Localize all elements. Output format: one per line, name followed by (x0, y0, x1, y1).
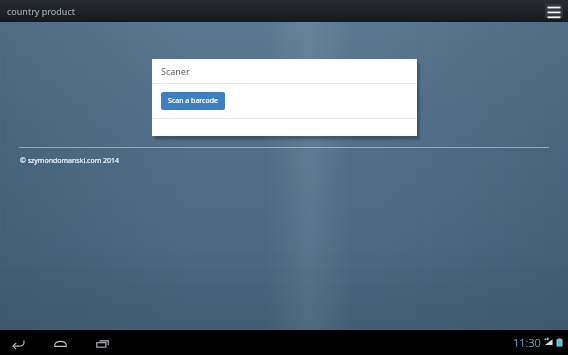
button[interactable]: Menu (544, 3, 564, 19)
button[interactable]: Scan a barcode (161, 92, 225, 110)
button[interactable]: Back (8, 333, 28, 353)
staticText: Scan a barcode (168, 96, 218, 106)
staticText: Scaner (161, 65, 190, 77)
button[interactable]: Recent apps (92, 333, 112, 353)
button[interactable]: Home (50, 333, 70, 353)
staticText: country product (7, 5, 75, 17)
staticText: © szymondomanski.com 2014 (20, 156, 120, 166)
staticText: 11:30 (513, 335, 541, 350)
